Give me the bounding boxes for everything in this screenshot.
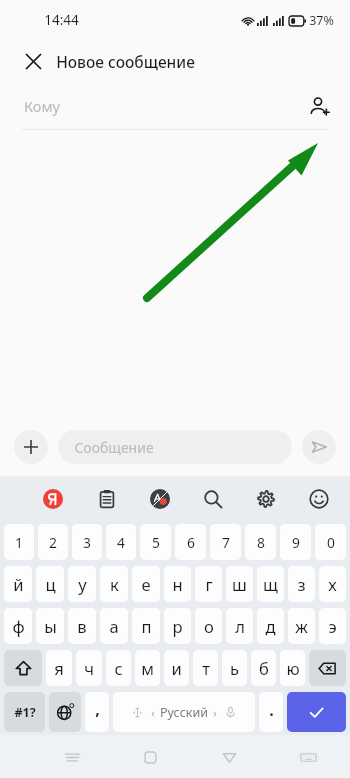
staticText: п [141,615,152,638]
button[interactable]: Yandex [36,482,70,516]
button[interactable]: Home [133,740,167,774]
button[interactable]: Search [196,482,230,516]
staticText: 3 [83,533,91,552]
staticText: 9 [292,533,300,552]
button[interactable]: Shift [4,650,42,686]
staticText: 8 [257,533,265,552]
staticText: э [328,615,337,638]
button[interactable]: Send [302,430,336,464]
button[interactable]: 9 [280,524,311,560]
button[interactable]: Emoji [302,482,336,516]
button[interactable]: ю [280,650,305,686]
staticText: л [235,615,245,638]
button[interactable]: 8 [245,524,276,560]
staticText: 6 [187,533,195,552]
button[interactable]: ы [36,608,64,644]
button[interactable]: л [226,608,253,644]
button[interactable]: ь [222,650,247,686]
button[interactable]: т [193,650,218,686]
button[interactable]: Translate [143,482,177,516]
staticText: ю [286,657,300,679]
button[interactable]: м [135,650,160,686]
staticText: щ [263,573,278,596]
button[interactable]: Add contact [302,89,336,123]
staticText: ш [232,573,247,596]
button[interactable]: э [319,608,346,644]
button[interactable]: Enter [287,692,346,732]
button[interactable]: н [164,566,191,602]
staticText: 7 [222,533,230,552]
button[interactable]: #1? [4,692,45,732]
button[interactable]: и [164,650,189,686]
button[interactable]: , [85,692,109,732]
button[interactable]: п [132,608,160,644]
button[interactable]: с [106,650,131,686]
button[interactable]: ш [226,566,253,602]
staticText: ж [295,615,308,638]
button[interactable]: 2 [38,524,68,560]
button[interactable]: р [164,608,191,644]
button[interactable]: х [319,566,346,602]
button[interactable]: Сообщение [58,430,292,464]
button[interactable]: к [100,566,128,602]
staticText: ь [230,657,239,679]
staticText: т [202,657,210,679]
button[interactable]: Change language [49,692,81,732]
button[interactable]: ц [36,566,64,602]
staticText: ф [12,615,25,638]
staticText: б [259,657,269,679]
button[interactable]: в [68,608,96,644]
staticText: 4 [117,533,125,552]
button[interactable]: ж [288,608,315,644]
button[interactable]: о [195,608,222,644]
staticText: Русский [160,704,208,721]
button[interactable]: д [257,608,284,644]
button[interactable]: щ [257,566,284,602]
staticText: #1? [14,704,36,721]
button[interactable]: Recents [55,740,89,774]
staticText: ы [44,615,57,638]
button[interactable]: 3 [72,524,102,560]
button[interactable]: з [288,566,315,602]
button[interactable]: й [4,566,32,602]
staticText: ‹ [151,705,155,720]
button[interactable]: Attach [14,430,48,464]
staticText: ч [84,657,94,679]
button[interactable]: е [132,566,160,602]
button[interactable]: а [100,608,128,644]
button[interactable]: Settings [249,482,283,516]
button[interactable]: б [251,650,276,686]
button[interactable]: ф [4,608,32,644]
button[interactable]: 6 [175,524,206,560]
button[interactable]: 4 [106,524,136,560]
button[interactable]: 7 [210,524,241,560]
button[interactable]: 0 [315,524,346,560]
staticText: . [269,699,274,721]
staticText: х [328,573,337,596]
staticText: 5 [152,533,160,552]
button[interactable]: ч [76,650,102,686]
staticText: к [110,573,119,596]
staticText: у [78,573,87,596]
button[interactable]: 5 [140,524,171,560]
button[interactable]: Hide keyboard [291,740,325,774]
button[interactable]: Back [212,740,246,774]
staticText: , [95,698,100,720]
button[interactable]: Clipboard [90,482,124,516]
staticText: ц [45,573,56,596]
button[interactable]: г [195,566,222,602]
staticText: Кому [24,96,60,116]
staticText: я [54,657,64,679]
button[interactable]: 1 [4,524,34,560]
staticText: 37% [309,12,334,29]
button[interactable]: Backspace [309,650,346,686]
button[interactable]: . [259,692,283,732]
staticText: р [172,615,183,638]
button[interactable]: Close [18,46,48,76]
button[interactable]: у [68,566,96,602]
staticText: й [13,573,24,596]
button[interactable]: я [46,650,72,686]
staticText: 1 [15,533,23,552]
staticText: 0 [327,533,335,552]
button[interactable]: Space [113,692,255,732]
